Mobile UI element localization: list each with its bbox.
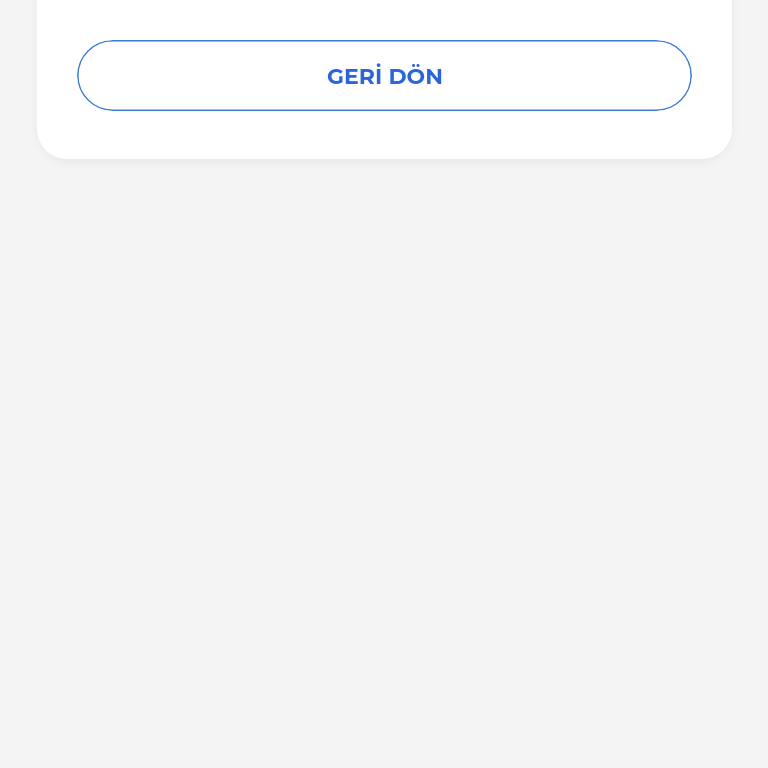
- staticText: GERİ DÖN: [327, 63, 443, 90]
- button[interactable]: GERİ DÖN: [77, 40, 692, 111]
